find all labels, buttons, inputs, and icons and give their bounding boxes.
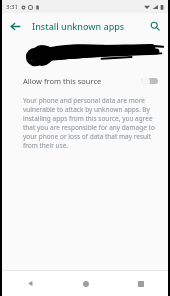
staticText: Install unknown apps xyxy=(32,20,125,32)
staticText: Your phone and personal data are more vu… xyxy=(23,96,156,150)
staticText: 3:31 xyxy=(6,3,18,11)
button[interactable]: Back xyxy=(2,271,58,296)
button[interactable]: Search xyxy=(142,13,168,39)
button[interactable]: Back xyxy=(2,13,28,39)
button[interactable]: Recent apps xyxy=(113,271,168,296)
button[interactable]: Allow from this source xyxy=(2,69,168,93)
staticText: Allow from this source xyxy=(23,76,102,86)
button[interactable]: Home xyxy=(58,271,113,296)
